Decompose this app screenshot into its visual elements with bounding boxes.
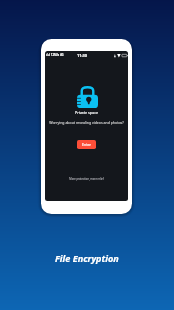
- staticText: 11:30: [77, 53, 87, 58]
- staticText: ıl.ıl 12M/s 4G: [46, 53, 64, 57]
- staticText: More protection, more relief: [45, 177, 128, 181]
- button[interactable]: Enter: [77, 140, 96, 149]
- staticText: Private space: [45, 110, 128, 115]
- staticText: File Encryption: [55, 252, 119, 264]
- staticText: Worrying about revealing videos and phot…: [45, 120, 128, 125]
- staticText: Enter: [82, 142, 92, 147]
